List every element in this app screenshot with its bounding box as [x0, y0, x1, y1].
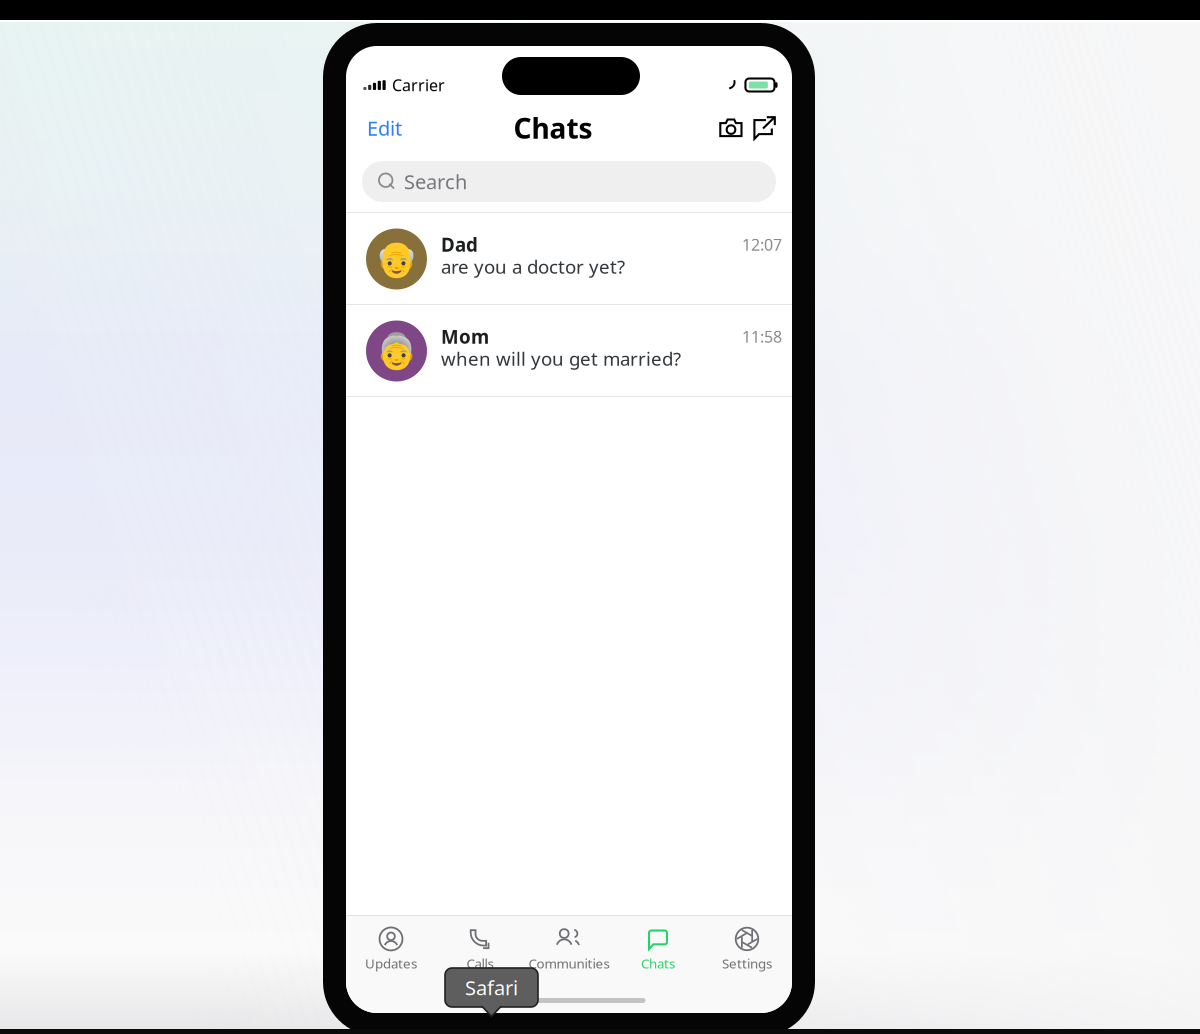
staticText: are you a doctor yet?: [441, 254, 625, 279]
button[interactable]: Camera: [714, 111, 748, 144]
staticText: Search: [404, 168, 467, 195]
staticText: Dad: [441, 232, 478, 257]
button[interactable]: Edit: [362, 107, 407, 149]
button[interactable]: Updates: [346, 924, 435, 974]
button[interactable]: Communities: [524, 924, 613, 974]
staticText: when will you get married?: [441, 346, 681, 371]
staticText: 11:58: [742, 326, 782, 347]
staticText: 12:07: [742, 234, 782, 255]
staticText: Carrier: [392, 74, 445, 96]
button[interactable]: Settings: [702, 924, 791, 974]
button[interactable]: New chat: [748, 111, 781, 144]
button[interactable]: Search: [362, 161, 776, 202]
staticText: Edit: [367, 115, 402, 141]
staticText: Safari: [465, 974, 518, 1001]
button[interactable]: 👴: [346, 213, 792, 305]
button[interactable]: 👵: [346, 305, 792, 397]
button[interactable]: Calls: [435, 924, 524, 974]
staticText: Mom: [441, 324, 489, 349]
staticText: 👵: [375, 331, 418, 371]
button[interactable]: Chats: [613, 924, 702, 974]
staticText: Communities: [528, 954, 609, 972]
staticText: Settings: [722, 954, 772, 972]
staticText: Calls: [466, 954, 493, 972]
staticText: Updates: [365, 954, 417, 972]
staticText: 👴: [375, 239, 418, 279]
staticText: Chats: [641, 954, 675, 972]
staticText: Chats: [513, 109, 592, 147]
